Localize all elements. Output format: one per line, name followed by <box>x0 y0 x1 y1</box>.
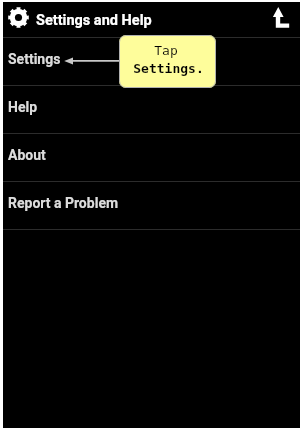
button[interactable]: Go up one level <box>269 5 297 33</box>
button[interactable]: Tap <box>119 35 216 88</box>
button[interactable]: About <box>3 133 300 181</box>
button[interactable]: Settings <box>8 7 29 28</box>
staticText: Settings. <box>133 61 204 76</box>
staticText: Report a Problem <box>8 195 119 211</box>
staticText: Tap <box>154 43 178 58</box>
button[interactable]: Report a Problem <box>3 181 300 229</box>
staticText: Settings <box>8 51 61 67</box>
button[interactable]: Settings <box>3 37 300 85</box>
button[interactable]: Help <box>3 85 300 133</box>
staticText: About <box>8 147 46 163</box>
staticText: Help <box>8 99 38 115</box>
staticText: Settings and Help <box>36 12 152 29</box>
